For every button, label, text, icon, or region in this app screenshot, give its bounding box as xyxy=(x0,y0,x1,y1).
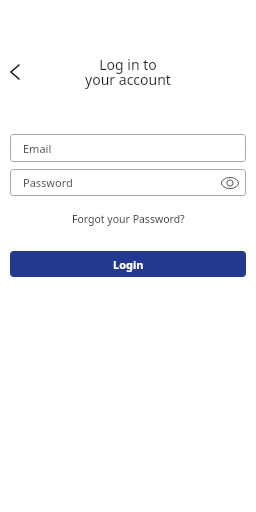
staticText: Log in to your account xyxy=(0,55,256,89)
button[interactable]: Login xyxy=(10,251,246,277)
staticText: Password xyxy=(23,175,73,190)
button[interactable] xyxy=(3,59,29,85)
staticText: Forgot your Password? xyxy=(72,212,185,226)
button[interactable]: Password xyxy=(10,169,246,196)
button[interactable]: Email xyxy=(10,134,246,162)
staticText: Email xyxy=(23,141,52,156)
button[interactable]: Forgot your Password? xyxy=(72,212,185,226)
staticText: Login xyxy=(113,257,144,272)
